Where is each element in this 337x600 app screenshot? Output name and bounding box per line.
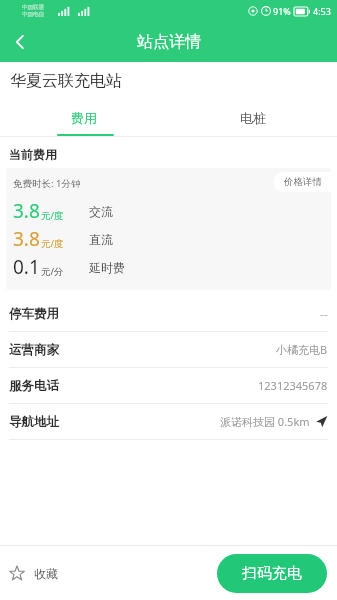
button[interactable]: 电桩	[168, 100, 337, 136]
button[interactable]: 导航地址	[0, 404, 337, 440]
other: Navigate	[315, 415, 328, 428]
staticText: 直流	[89, 232, 113, 247]
staticText: 91%	[273, 5, 291, 17]
staticText: 元/度	[41, 237, 64, 250]
staticText: 导航地址	[9, 414, 59, 430]
staticText: 3.8	[13, 226, 40, 252]
staticText: 中国联通	[22, 4, 44, 11]
staticText: 交流	[89, 204, 113, 219]
staticText: 费用	[71, 110, 97, 126]
staticText: 12312345678	[258, 378, 328, 393]
staticText: 元/分	[41, 265, 64, 278]
staticText: 运营商家	[9, 342, 59, 358]
staticText: --	[320, 306, 328, 322]
staticText: 收藏	[34, 566, 58, 581]
staticText: 延时费	[89, 260, 125, 275]
button[interactable]: 运营商家	[0, 332, 337, 368]
button[interactable]: 价格详情	[274, 172, 331, 192]
button[interactable]: Back	[0, 22, 40, 62]
staticText: 4:53	[313, 5, 331, 17]
staticText: 派诺科技园 0.5km	[220, 414, 310, 429]
staticText: 停车费用	[9, 306, 59, 322]
staticText: 服务电话	[9, 378, 59, 394]
button[interactable]: 费用	[0, 100, 168, 136]
button[interactable]: 停车费用	[0, 296, 337, 332]
staticText: 3.8	[13, 198, 40, 224]
staticText: 当前费用	[9, 147, 57, 162]
staticText: 中国电信	[22, 11, 44, 18]
staticText: 华夏云联充电站	[10, 71, 122, 91]
staticText: 价格详情	[284, 176, 322, 188]
button[interactable]: 服务电话	[0, 368, 337, 404]
staticText: 扫码充电	[242, 564, 302, 583]
staticText: 小橘充电B	[276, 342, 328, 357]
staticText: 电桩	[240, 110, 266, 126]
staticText: 0.1	[13, 254, 40, 280]
staticText: 元/度	[41, 209, 64, 222]
staticText: 免费时长: 1分钟	[13, 177, 81, 190]
button[interactable]: 收藏	[0, 559, 68, 587]
staticText: 站点详情	[137, 32, 201, 52]
button[interactable]: 扫码充电	[217, 554, 327, 593]
